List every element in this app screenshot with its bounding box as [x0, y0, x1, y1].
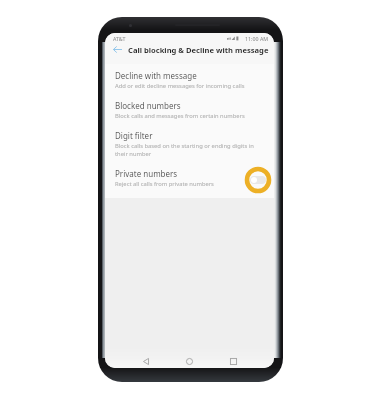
staticText: Reject all calls from private numbers [115, 180, 214, 188]
button[interactable]: Digit filter [105, 124, 274, 162]
staticText: Add or edit decline messages for incomin… [115, 82, 245, 90]
staticText: 11:00 AM [245, 35, 269, 42]
staticText: Blocked numbers [115, 100, 181, 111]
staticText: Private numbers [115, 168, 178, 179]
button[interactable]: Private numbers [105, 162, 274, 192]
button[interactable]: Decline with message [105, 64, 274, 94]
staticText: Decline with message [115, 70, 197, 81]
button[interactable]: Navigate up [112, 44, 123, 55]
button[interactable]: Blocked numbers [105, 94, 274, 124]
staticText: Block calls and messages from certain nu… [115, 112, 245, 120]
button[interactable]: Private numbers toggle [250, 176, 266, 184]
staticText: AT&T [113, 35, 126, 42]
button[interactable]: Back [138, 353, 154, 368]
button[interactable]: Home [181, 353, 197, 368]
staticText: Call blocking & Decline with message [128, 45, 269, 55]
staticText: Block calls based on the starting or end… [115, 142, 266, 158]
staticText: Digit filter [115, 130, 153, 141]
button[interactable]: Recent apps [225, 353, 241, 368]
